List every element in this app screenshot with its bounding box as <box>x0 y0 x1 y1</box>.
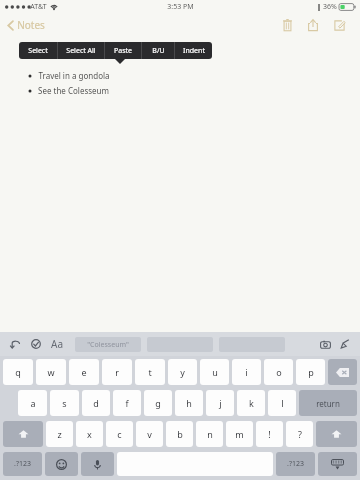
button[interactable]: k <box>237 390 265 416</box>
button[interactable]: Delete <box>274 15 300 35</box>
button[interactable]: j <box>206 390 234 416</box>
staticText: j <box>219 397 222 409</box>
button[interactable]: Emoji <box>45 452 78 476</box>
staticText: B/U <box>152 46 165 56</box>
staticText: x <box>87 428 92 440</box>
staticText: .?123 <box>287 459 304 469</box>
button[interactable]: B/U <box>142 42 174 59</box>
button[interactable]: ! <box>256 421 283 447</box>
staticText: r <box>115 366 119 378</box>
button[interactable]: Markup <box>336 335 354 353</box>
button[interactable]: s <box>50 390 79 416</box>
staticText: Paste <box>114 46 132 56</box>
staticText: "Colesseum" <box>87 340 129 350</box>
staticText: Notes <box>17 18 45 32</box>
button[interactable]: Select <box>19 42 57 59</box>
button[interactable]: Undo <box>6 335 24 353</box>
staticText: w <box>47 366 55 378</box>
staticText: See the Colesseum <box>38 85 109 96</box>
staticText: Things to do in Italy <box>26 42 133 57</box>
staticText: ? <box>298 428 302 440</box>
staticText: .?123 <box>14 459 31 469</box>
staticText: Aa <box>51 337 63 351</box>
button[interactable]: Backspace <box>328 359 357 385</box>
staticText: f <box>125 397 129 409</box>
button[interactable]: n <box>196 421 223 447</box>
button[interactable]: Checklist <box>27 335 45 353</box>
button[interactable]: ? <box>286 421 313 447</box>
button[interactable]: q <box>3 359 33 385</box>
button[interactable]: Paste <box>105 42 141 59</box>
staticText: i <box>245 366 248 378</box>
button[interactable]: return <box>299 390 357 416</box>
staticText: c <box>117 428 122 440</box>
button[interactable]: x <box>76 421 103 447</box>
button[interactable]: d <box>82 390 110 416</box>
button[interactable]: r <box>102 359 132 385</box>
staticText: l <box>281 397 284 409</box>
staticText: Select All <box>66 46 96 56</box>
staticText: v <box>147 428 152 440</box>
staticText: e <box>81 366 87 378</box>
button[interactable]: h <box>175 390 203 416</box>
staticText: o <box>276 366 282 378</box>
staticText: 3:53 PM <box>167 2 194 12</box>
staticText: 36% <box>323 2 337 12</box>
staticText: k <box>249 397 254 409</box>
staticText: h <box>186 397 192 409</box>
staticText: Select <box>28 46 48 56</box>
staticText: Indent <box>183 46 205 56</box>
button[interactable]: w <box>36 359 66 385</box>
button[interactable]: m <box>226 421 253 447</box>
button[interactable]: Aa <box>48 335 66 353</box>
button[interactable]: Camera <box>316 335 334 353</box>
button[interactable]: g <box>144 390 172 416</box>
button[interactable]: Shift <box>3 421 43 447</box>
staticText: z <box>57 428 62 440</box>
button[interactable]: Notes <box>0 15 53 35</box>
staticText: Travel in a gondola <box>38 70 110 81</box>
button[interactable]: .?123 <box>276 452 315 476</box>
staticText: AT&T <box>30 2 47 12</box>
staticText: u <box>212 366 218 378</box>
staticText: ! <box>268 428 271 440</box>
staticText: return <box>316 398 340 409</box>
button[interactable]: f <box>113 390 141 416</box>
staticText: q <box>15 366 21 378</box>
staticText: t <box>148 366 152 378</box>
button[interactable]: Share <box>300 15 326 35</box>
button[interactable]: Shift <box>316 421 357 447</box>
button[interactable]: .?123 <box>3 452 42 476</box>
staticText: y <box>180 366 185 378</box>
button[interactable]: Hide keyboard <box>318 452 357 476</box>
staticText: n <box>207 428 213 440</box>
button[interactable]: p <box>296 359 325 385</box>
button[interactable]: z <box>46 421 73 447</box>
button[interactable]: Select All <box>58 42 104 59</box>
button[interactable]: b <box>166 421 193 447</box>
button[interactable]: "Colesseum" <box>75 337 141 352</box>
staticText: g <box>155 397 161 409</box>
staticText: b <box>177 428 183 440</box>
staticText: a <box>30 397 36 409</box>
staticText: d <box>93 397 99 409</box>
button[interactable]: Dictate <box>81 452 114 476</box>
button[interactable]: i <box>232 359 261 385</box>
button[interactable]: c <box>106 421 133 447</box>
button[interactable]: l <box>268 390 296 416</box>
button[interactable]: u <box>200 359 229 385</box>
button[interactable]: y <box>168 359 197 385</box>
button[interactable]: e <box>69 359 99 385</box>
button[interactable]: v <box>136 421 163 447</box>
staticText: m <box>235 428 244 440</box>
button[interactable]: t <box>135 359 165 385</box>
staticText: p <box>308 366 314 378</box>
button[interactable]: Indent <box>175 42 212 59</box>
button[interactable]: o <box>264 359 293 385</box>
staticText: s <box>62 397 67 409</box>
button[interactable]: a <box>18 390 47 416</box>
button[interactable]: Compose <box>326 15 352 35</box>
